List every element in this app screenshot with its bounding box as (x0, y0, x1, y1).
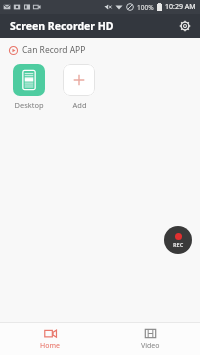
staticText: 100% (137, 3, 154, 12)
button[interactable]: Record (164, 226, 192, 254)
button[interactable]: Home (0, 323, 100, 355)
staticText: 10:29 AM (165, 2, 196, 12)
staticText: Add (72, 100, 87, 110)
button[interactable]: Video (100, 323, 200, 355)
staticText: Desktop (14, 100, 44, 110)
staticText: Screen Recorder HD (10, 19, 114, 33)
staticText: Home (40, 341, 60, 351)
button[interactable]: Desktop (12, 64, 46, 110)
staticText: REC (173, 241, 184, 248)
button[interactable]: Add (62, 64, 96, 110)
button[interactable]: Settings (176, 17, 194, 35)
staticText: Can Record APP (22, 44, 86, 56)
staticText: Video (141, 341, 160, 351)
